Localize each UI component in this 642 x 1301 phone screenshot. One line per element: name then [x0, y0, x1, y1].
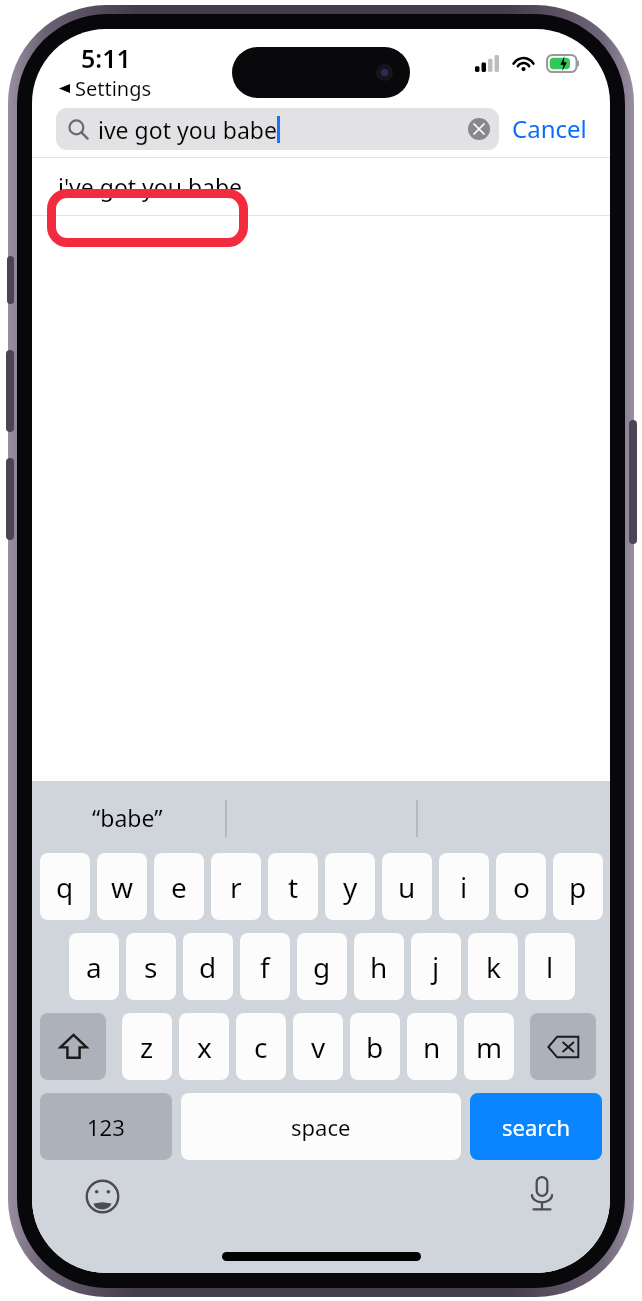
- staticText: a: [86, 948, 102, 986]
- button[interactable]: n: [407, 1013, 457, 1080]
- button[interactable]: q: [40, 853, 90, 920]
- staticText: 5:11: [81, 41, 131, 75]
- button[interactable]: search: [470, 1093, 602, 1160]
- button[interactable]: f: [240, 933, 290, 1000]
- button[interactable]: i've got you babe: [32, 158, 610, 215]
- staticText: 123: [87, 1112, 125, 1142]
- staticText: d: [199, 948, 217, 986]
- staticText: Settings: [75, 75, 152, 102]
- staticText: u: [398, 868, 416, 906]
- button[interactable]: p: [553, 853, 603, 920]
- button[interactable]: ive got you babe: [56, 108, 499, 150]
- staticText: i've got you babe: [58, 171, 243, 202]
- staticText: v: [311, 1028, 326, 1066]
- staticText: space: [291, 1112, 351, 1142]
- button[interactable]: w: [97, 853, 147, 920]
- button[interactable]: k: [468, 933, 518, 1000]
- button[interactable]: Cancel: [510, 105, 589, 152]
- staticText: h: [370, 948, 388, 986]
- button[interactable]: o: [496, 853, 546, 920]
- button[interactable]: a: [69, 933, 119, 1000]
- staticText: g: [313, 948, 331, 986]
- staticText: l: [546, 948, 554, 986]
- button[interactable]: h: [354, 933, 404, 1000]
- button[interactable]: e: [154, 853, 204, 920]
- button[interactable]: r: [211, 853, 261, 920]
- staticText: f: [260, 948, 270, 986]
- staticText: y: [343, 868, 358, 906]
- staticText: o: [513, 868, 530, 906]
- button[interactable]: t: [268, 853, 318, 920]
- button[interactable]: j: [411, 933, 461, 1000]
- button[interactable]: Dictation: [522, 1174, 562, 1214]
- staticText: s: [144, 948, 158, 986]
- staticText: i: [460, 868, 468, 906]
- button[interactable]: v: [293, 1013, 343, 1080]
- staticText: c: [254, 1028, 268, 1066]
- staticText: x: [197, 1028, 212, 1066]
- staticText: p: [569, 868, 587, 906]
- staticText: r: [230, 868, 242, 906]
- button[interactable]: s: [126, 933, 176, 1000]
- staticText: ive got you babe: [98, 114, 277, 145]
- staticText: Cancel: [512, 112, 587, 145]
- button[interactable]: Emoji keyboard: [82, 1176, 122, 1216]
- button[interactable]: g: [297, 933, 347, 1000]
- button[interactable]: y: [325, 853, 375, 920]
- button[interactable]: z: [122, 1013, 172, 1080]
- staticText: e: [171, 868, 187, 906]
- staticText: w: [111, 868, 134, 906]
- staticText: search: [502, 1112, 571, 1142]
- button[interactable]: Backspace: [530, 1013, 596, 1080]
- staticText: j: [432, 948, 440, 986]
- button[interactable]: x: [179, 1013, 229, 1080]
- button[interactable]: i: [439, 853, 489, 920]
- staticText: q: [56, 868, 74, 906]
- staticText: k: [486, 948, 501, 986]
- button[interactable]: d: [183, 933, 233, 1000]
- staticText: t: [288, 868, 299, 906]
- button[interactable]: Clear text: [468, 118, 490, 140]
- button[interactable]: m: [464, 1013, 514, 1080]
- button[interactable]: 123: [40, 1093, 172, 1160]
- button[interactable]: “babe”: [92, 802, 163, 833]
- staticText: m: [476, 1028, 503, 1066]
- button[interactable]: Shift: [40, 1013, 106, 1080]
- button[interactable]: l: [525, 933, 575, 1000]
- staticText: b: [366, 1028, 384, 1066]
- button[interactable]: space: [181, 1093, 461, 1160]
- staticText: n: [423, 1028, 441, 1066]
- button[interactable]: b: [350, 1013, 400, 1080]
- staticText: z: [140, 1028, 154, 1066]
- button[interactable]: c: [236, 1013, 286, 1080]
- button[interactable]: u: [382, 853, 432, 920]
